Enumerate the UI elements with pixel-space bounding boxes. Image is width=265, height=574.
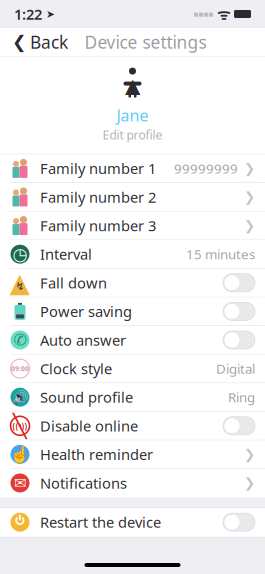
staticText: ❯ [244,447,255,462]
button[interactable]: ✉ [0,469,265,498]
button[interactable]: Toggle [223,513,255,531]
staticText: ↯ [15,280,24,292]
staticText: ❯ [244,161,255,176]
staticText: ✉ [14,475,26,491]
staticText: ❯ [244,475,255,490]
staticText: 15 minutes [186,245,255,263]
staticText: ⏻ [15,512,25,532]
staticText: ╲ [13,413,27,439]
staticText: ✆ [13,331,26,349]
staticText: ☝ [10,445,30,463]
staticText: ❯ [244,189,255,204]
staticText: Interval [40,244,92,264]
button[interactable]: Toggle [223,274,255,292]
button[interactable]: ▲ [0,269,265,297]
staticText: ((•)) [12,420,27,431]
staticText: Notifications [40,473,127,493]
button[interactable]: ◷ [0,240,265,269]
staticText: ᯤ [213,4,230,24]
staticText: Digital [216,360,255,377]
button[interactable]: Jane [88,103,176,145]
staticText: ▲ [9,268,30,298]
staticText: 09:00 [11,364,29,373]
staticText: Edit profile [102,127,162,143]
staticText: Family number 3 [40,216,156,235]
staticText: Clock style [40,359,112,378]
staticText: ◷ [12,244,27,264]
staticText: Power saving [40,302,132,321]
staticText: Ring [228,388,255,406]
staticText: 99999999 [174,159,238,177]
button[interactable]: ((•)) [0,412,265,440]
staticText: 🔊 [11,390,28,405]
button[interactable]: 🔊 [0,383,265,412]
staticText: Disable online [40,416,138,435]
staticText: ▲ [125,74,140,97]
button[interactable]: Toggle [223,417,255,435]
button[interactable]: Family number 2 [0,183,265,212]
staticText: Health reminder [40,445,153,464]
button[interactable]: ⏻ [0,508,265,537]
button[interactable]: Family number 1 [0,154,265,183]
button[interactable]: Toggle [223,331,255,349]
staticText: Back [30,30,68,53]
button[interactable]: 09:00 [0,355,265,383]
staticText: Device settings [84,30,206,53]
staticText: Auto answer [40,330,126,350]
staticText: Jane [116,105,148,126]
button[interactable]: ✆ [0,326,265,355]
staticText: Family number 1 [40,159,156,178]
staticText: Fall down [40,273,107,292]
button[interactable]: Power saving [0,297,265,326]
staticText: Family number 2 [40,187,156,207]
button[interactable]: Toggle [223,302,255,320]
staticText: ➤ [42,8,55,20]
button[interactable]: ☝ [0,440,265,469]
button[interactable]: Family number 3 [0,212,265,240]
staticText: Restart the device [40,512,161,532]
staticText: 1:22 [14,4,42,24]
staticText: ❯ [244,218,255,233]
staticText: ▪▪▪▪ [193,9,213,19]
staticText: Sound profile [40,387,133,407]
staticText: ❮ [12,32,27,52]
button[interactable]: ❮ [4,24,76,59]
